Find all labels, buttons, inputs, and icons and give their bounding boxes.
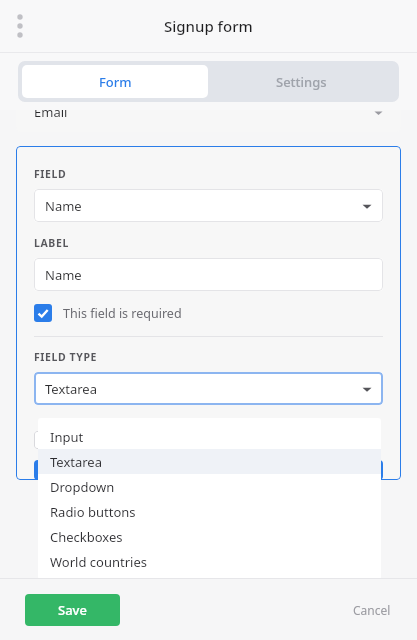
button[interactable]: Email field <box>16 110 401 132</box>
button[interactable]: Checkboxes <box>38 524 381 549</box>
staticText: This field is required <box>63 305 182 322</box>
staticText: FIELD TYPE <box>34 350 98 364</box>
button[interactable]: Toggle option <box>34 431 383 449</box>
staticText: Cancel <box>353 602 391 618</box>
staticText: Settings <box>276 73 327 91</box>
button[interactable]: Save <box>25 594 120 626</box>
staticText: Checkboxes <box>50 528 123 546</box>
staticText: Form <box>99 73 132 91</box>
button[interactable]: Input <box>38 424 381 449</box>
button[interactable]: Add field <box>34 460 383 480</box>
button[interactable]: Radio buttons <box>38 499 381 524</box>
staticText: Signup form <box>164 16 253 36</box>
button[interactable]: Form <box>22 65 208 98</box>
button[interactable]: World countries <box>38 549 381 574</box>
staticText: Name <box>45 266 82 284</box>
button[interactable]: Textarea <box>34 372 383 405</box>
staticText: Radio buttons <box>50 503 136 521</box>
staticText: Textarea <box>50 453 102 471</box>
button[interactable]: Dropdown <box>38 474 381 499</box>
button[interactable]: Cancel <box>353 602 391 618</box>
staticText: Textarea <box>45 380 97 398</box>
staticText: World countries <box>50 553 147 571</box>
staticText: FIELD <box>34 167 67 181</box>
button[interactable]: Textarea <box>38 449 381 474</box>
button[interactable]: Name <box>34 258 383 291</box>
button[interactable]: Name <box>34 189 383 222</box>
button[interactable]: This field is required <box>34 304 383 322</box>
staticText: Email <box>34 110 68 121</box>
staticText: LABEL <box>34 236 69 250</box>
button[interactable]: Settings <box>208 65 395 98</box>
staticText: Dropdown <box>50 478 115 496</box>
staticText: Input <box>50 428 84 446</box>
staticText: Name <box>45 197 82 215</box>
staticText: Save <box>58 601 87 619</box>
button[interactable]: More options <box>3 9 37 43</box>
